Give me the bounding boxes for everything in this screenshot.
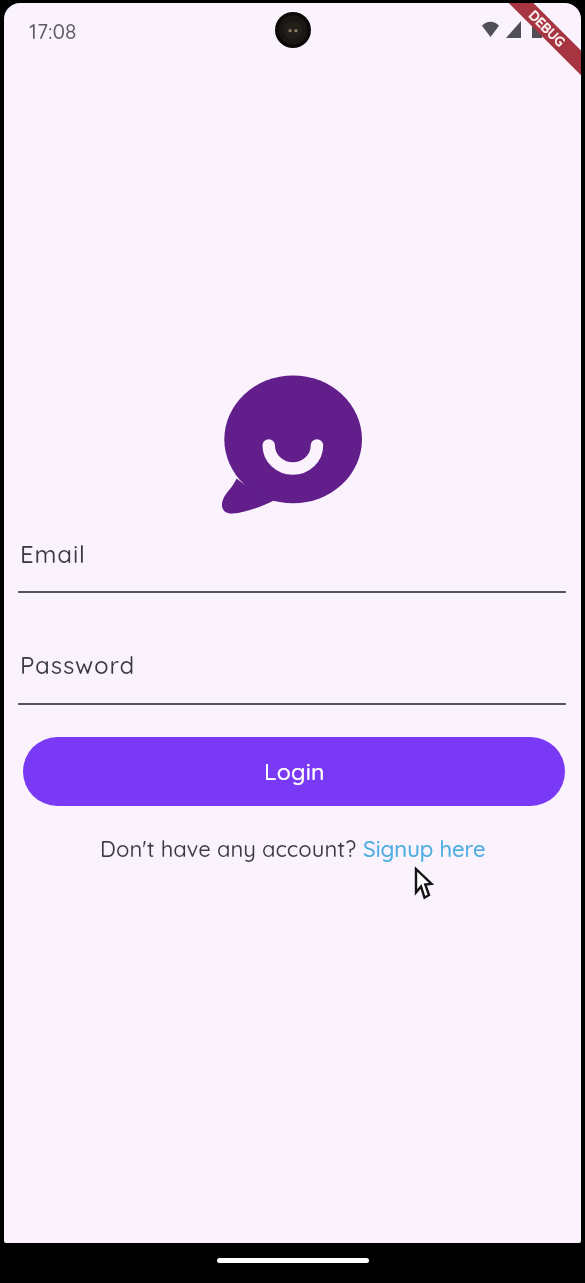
staticText: Email (20, 539, 86, 569)
button[interactable]: Login (23, 737, 565, 806)
staticText: Signup here (363, 835, 486, 863)
other: Wi-Fi (478, 21, 503, 37)
staticText: Password (20, 650, 136, 680)
staticText: Don't have any account? (100, 835, 363, 863)
other: Home (217, 1258, 369, 1263)
staticText: DEBUG (526, 7, 569, 50)
other: Mobile signal (506, 21, 521, 38)
other: App logo (220, 371, 380, 521)
staticText: 17:08 (29, 18, 77, 44)
other: Camera (275, 12, 311, 48)
button[interactable]: Signup here (363, 835, 486, 863)
staticText: Login (264, 757, 325, 786)
